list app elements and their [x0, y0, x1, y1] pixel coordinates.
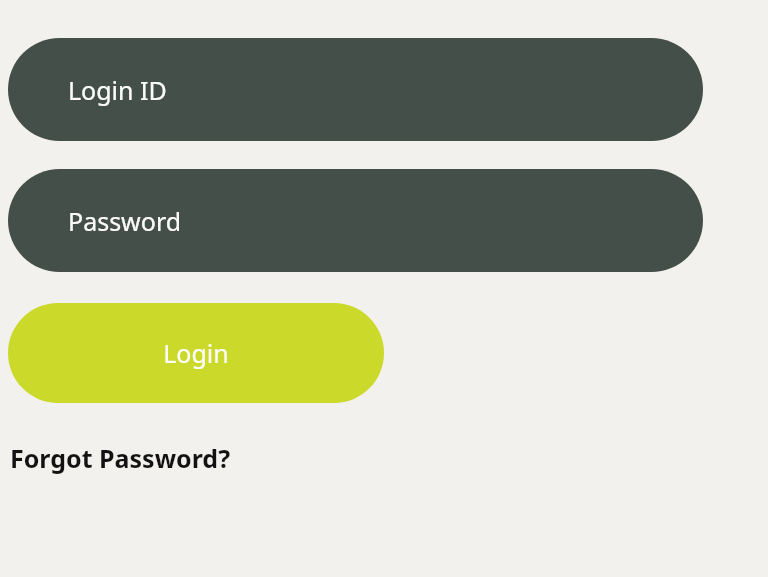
button[interactable]: Forgot Password [8, 434, 258, 482]
staticText: Login ID [68, 73, 167, 107]
button[interactable]: Login [8, 303, 384, 403]
staticText: Forgot Password? [10, 441, 231, 475]
staticText: Password [68, 204, 182, 238]
button[interactable]: Login ID [8, 38, 703, 141]
staticText: Login [163, 336, 229, 370]
button[interactable]: Password [8, 169, 703, 272]
